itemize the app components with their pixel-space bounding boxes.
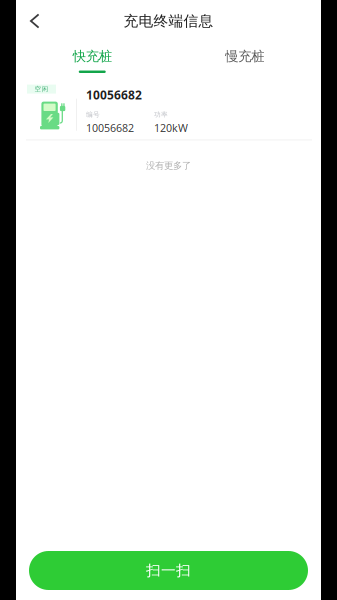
- button[interactable]: 扫一扫: [29, 551, 308, 590]
- staticText: 编号: [86, 110, 100, 119]
- button[interactable]: 快充桩: [16, 42, 168, 74]
- staticText: 快充桩: [73, 48, 112, 64]
- button[interactable]: Back: [16, 1, 51, 41]
- staticText: 功率: [154, 110, 168, 119]
- button[interactable]: 慢充桩: [168, 42, 321, 74]
- staticText: 没有更多了: [146, 160, 191, 171]
- staticText: 扫一扫: [146, 561, 191, 579]
- staticText: 空闲: [34, 85, 48, 93]
- staticText: 充电终端信息: [123, 12, 213, 30]
- staticText: 10056682: [86, 121, 134, 135]
- staticText: 120kW: [154, 121, 188, 135]
- staticText: 10056682: [86, 87, 142, 103]
- staticText: 慢充桩: [225, 48, 264, 64]
- button[interactable]: 空闲: [16, 74, 321, 144]
